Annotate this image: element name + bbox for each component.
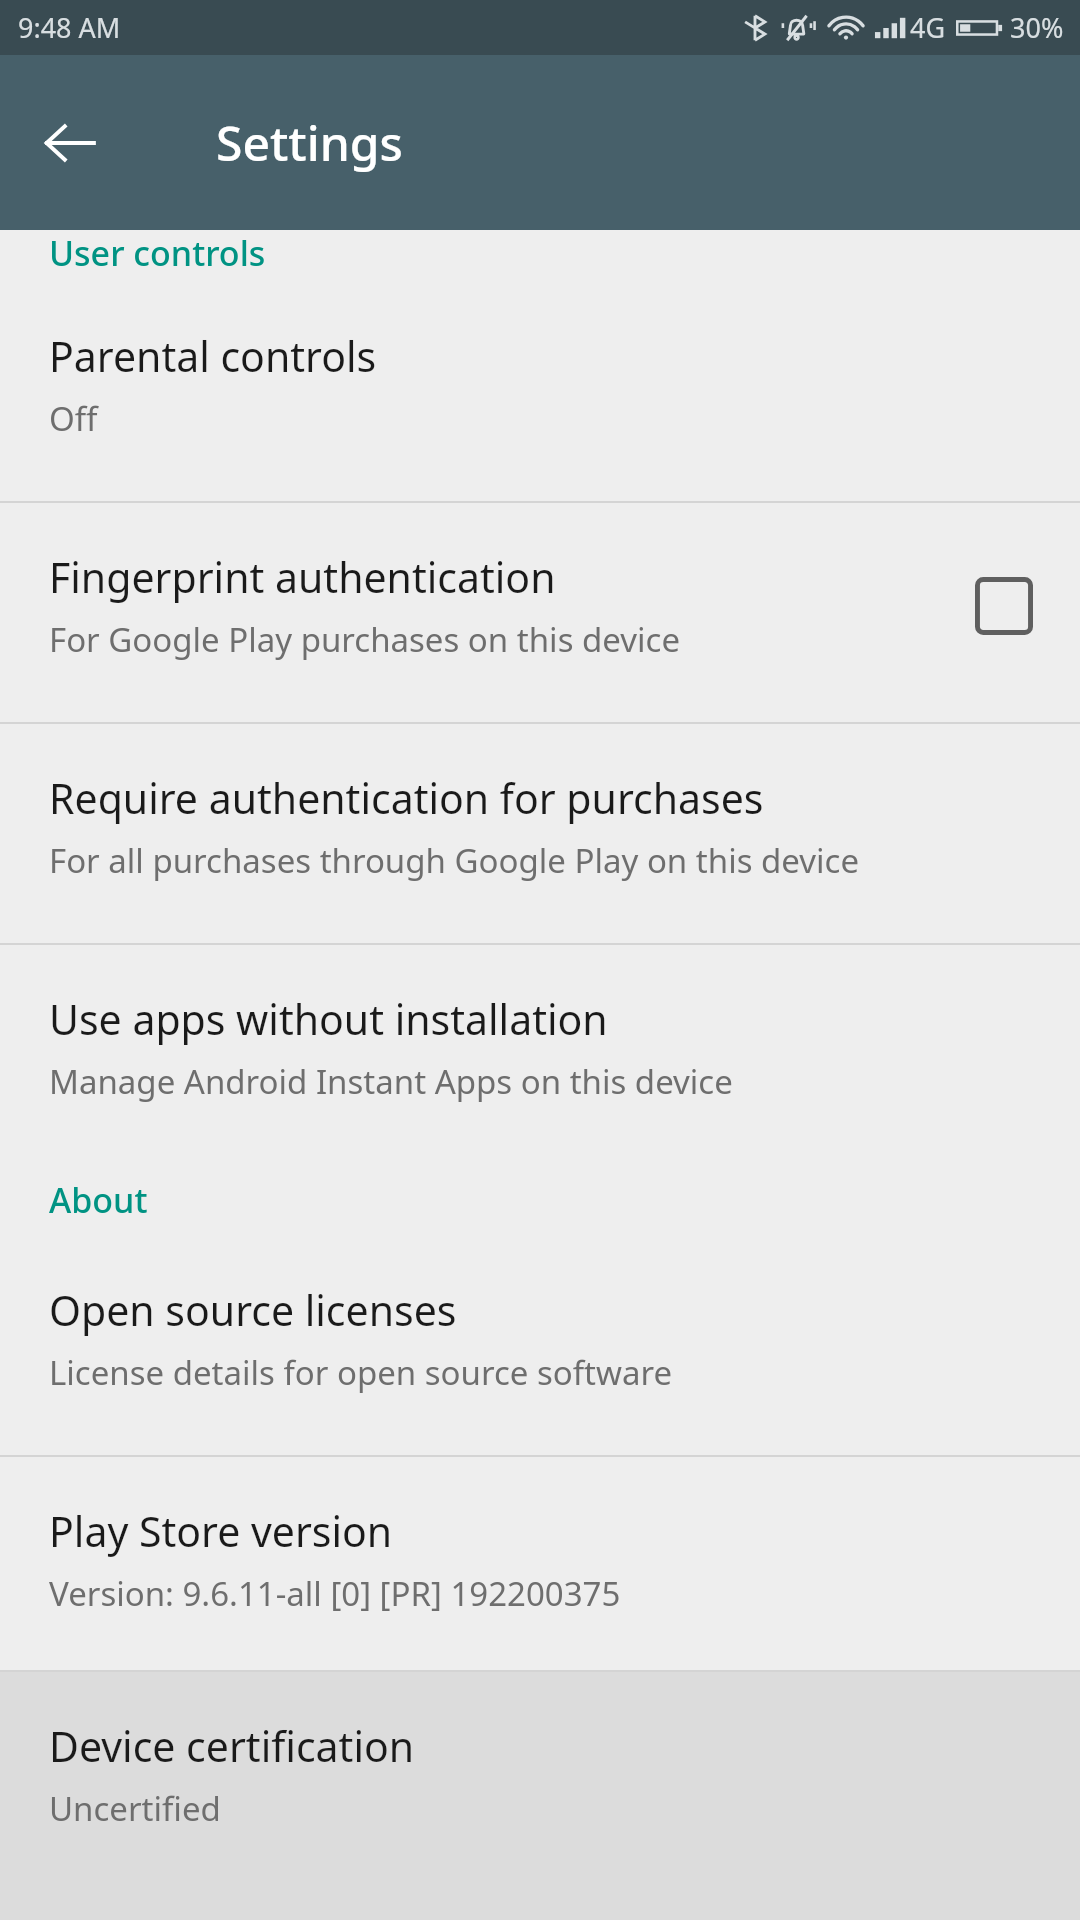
staticText: Play Store version [49, 1503, 393, 1559]
staticText: About [49, 1177, 148, 1223]
button[interactable]: Play Store version [0, 1457, 1080, 1670]
staticText: 30% [1010, 9, 1064, 46]
button[interactable]: Require authentication for purchases [0, 724, 1080, 943]
button[interactable]: Back [26, 99, 114, 187]
button[interactable]: Fingerprint authentication checkbox [956, 558, 1052, 654]
button[interactable]: Open source licenses [0, 1260, 1080, 1455]
staticText: User controls [49, 230, 266, 276]
staticText: Uncertified [49, 1786, 221, 1831]
button[interactable]: Fingerprint authentication [0, 503, 1080, 722]
staticText: Device certification [49, 1718, 415, 1774]
staticText: Use apps without installation [49, 991, 608, 1047]
staticText: Version: 9.6.11-all [0] [PR] 192200375 [49, 1571, 621, 1616]
staticText: Parental controls [49, 328, 377, 384]
staticText: License details for open source software [49, 1350, 673, 1395]
staticText: Open source licenses [49, 1282, 457, 1338]
staticText: For all purchases through Google Play on… [49, 838, 860, 883]
staticText: Settings [216, 110, 403, 175]
staticText: Fingerprint authentication [49, 549, 556, 605]
staticText: For Google Play purchases on this device [49, 617, 680, 662]
staticText: Manage Android Instant Apps on this devi… [49, 1059, 733, 1104]
staticText: 9:48 AM [18, 9, 121, 46]
staticText: 4G [910, 9, 946, 46]
staticText: Require authentication for purchases [49, 770, 764, 826]
button[interactable]: Device certification [0, 1672, 1080, 1891]
staticText: Off [49, 396, 98, 441]
button[interactable]: Use apps without installation [0, 945, 1080, 1140]
button[interactable]: Parental controls [0, 282, 1080, 501]
